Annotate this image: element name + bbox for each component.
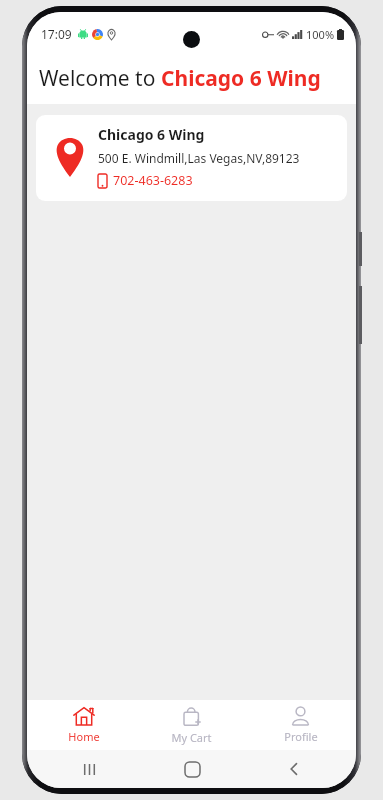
staticText: Chicago 6 Wing xyxy=(161,64,321,93)
staticText: 702-463-6283 xyxy=(113,172,193,189)
staticText: 500 E. Windmill,Las Vegas,NV,89123 xyxy=(98,150,300,166)
button[interactable]: Chicago 6 Wing xyxy=(36,115,347,201)
staticText: Home xyxy=(68,729,100,744)
staticText: Chicago 6 Wing xyxy=(98,125,205,144)
staticText: My Cart xyxy=(171,730,212,745)
button[interactable]: Recents xyxy=(49,750,129,788)
staticText: Profile xyxy=(284,729,318,744)
button[interactable]: Back xyxy=(254,750,334,788)
button[interactable]: Home xyxy=(31,701,136,749)
staticText: 17:09 xyxy=(41,26,72,42)
button[interactable]: 702-463-6283 xyxy=(98,172,193,189)
button[interactable]: Home xyxy=(152,750,232,788)
staticText: Welcome to xyxy=(39,64,161,93)
staticText: 100% xyxy=(306,27,335,42)
button[interactable]: My Cart xyxy=(139,701,244,750)
button[interactable]: Profile xyxy=(248,701,353,749)
